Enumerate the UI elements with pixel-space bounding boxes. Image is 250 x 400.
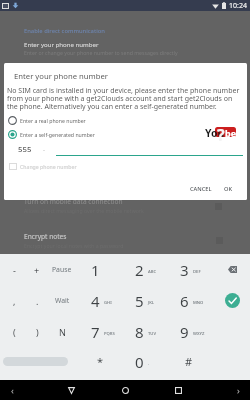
staticText: Enter or change your phone number to sen… <box>24 49 178 56</box>
button[interactable]: Next <box>226 380 250 400</box>
staticText: Wait <box>55 296 70 305</box>
button[interactable]: Recents <box>160 380 196 400</box>
staticText: ? <box>217 124 225 144</box>
staticText: Turn on mobile data connection <box>24 197 123 206</box>
button[interactable]: Pause <box>50 254 74 285</box>
button[interactable]: CANCEL <box>185 181 217 197</box>
staticText: Enter a self-generated number <box>20 131 95 138</box>
staticText: Enable direct communication <box>24 27 105 35</box>
button[interactable]: ( <box>2 316 26 347</box>
staticText: 9 <box>180 322 189 342</box>
staticText: TUV <box>148 331 157 337</box>
staticText: ) <box>36 326 39 338</box>
button[interactable]: - <box>2 254 26 285</box>
staticText: 555 <box>18 144 32 155</box>
staticText: - <box>43 146 45 154</box>
button[interactable]: Back <box>53 380 89 400</box>
button[interactable]: * <box>78 346 122 377</box>
staticText: N <box>59 326 66 338</box>
staticText: * <box>97 354 104 369</box>
staticText: , <box>13 295 16 307</box>
staticText: . <box>36 295 39 307</box>
staticText: 3 <box>180 260 189 280</box>
button[interactable]: 7 <box>83 316 127 347</box>
staticText: You <box>205 126 225 140</box>
button[interactable]: Change phone number <box>4 160 247 172</box>
staticText: Enter your phone number <box>14 71 108 81</box>
button[interactable]: # <box>167 346 211 377</box>
staticText: 1 <box>91 260 100 280</box>
button[interactable]: Wait <box>50 285 74 316</box>
staticText: MNO <box>193 300 204 306</box>
staticText: 7 <box>91 322 100 342</box>
staticText: 5 <box>135 291 144 311</box>
staticText: DEF <box>193 269 201 275</box>
button[interactable]: OK <box>219 181 238 197</box>
staticText: ‹ <box>11 384 14 396</box>
staticText: ( <box>13 326 16 338</box>
staticText: CANCEL <box>190 185 212 193</box>
button[interactable]: Enter <box>214 285 250 316</box>
button[interactable]: 4 <box>83 285 127 316</box>
button[interactable]: Enter a self-generated number <box>4 128 247 141</box>
staticText: . <box>148 361 150 367</box>
button[interactable]: 5 <box>127 285 171 316</box>
button[interactable]: Enter a real phone number <box>4 114 247 127</box>
button[interactable]: Home <box>107 380 143 400</box>
button[interactable]: 1 <box>83 254 127 285</box>
button[interactable]: 6 <box>172 285 216 316</box>
staticText: + <box>34 264 40 276</box>
staticText: Enter your phone number <box>24 40 99 48</box>
staticText: No SIM card is installed in your device,… <box>7 86 241 111</box>
button[interactable]: 0 <box>127 346 171 377</box>
staticText: WXYZ <box>193 331 205 337</box>
staticText: be <box>225 127 237 139</box>
button[interactable]: Backspace <box>214 254 250 285</box>
staticText: # <box>185 354 193 369</box>
staticText: OK <box>224 185 233 193</box>
button[interactable]: + <box>25 254 49 285</box>
staticText: 2 <box>135 260 144 280</box>
button[interactable]: 8 <box>127 316 171 347</box>
staticText: GHI <box>104 300 112 306</box>
button[interactable]: 3 <box>172 254 216 285</box>
staticText: 8 <box>135 322 144 342</box>
button[interactable]: , <box>2 285 26 316</box>
staticText: 6 <box>180 291 189 311</box>
staticText: - <box>13 264 16 276</box>
button[interactable]: ) <box>25 316 49 347</box>
staticText: Change phone number <box>20 163 77 170</box>
button[interactable]: 2 <box>127 254 171 285</box>
staticText: Encrypt notes <box>24 232 67 241</box>
button[interactable]: Space <box>3 346 68 377</box>
button[interactable]: . <box>25 285 49 316</box>
staticText: Enter a real phone number <box>20 117 86 124</box>
staticText: PQRS <box>104 331 115 337</box>
button[interactable]: 9 <box>172 316 216 347</box>
button[interactable]: N <box>50 316 74 347</box>
staticText: JKL <box>148 300 155 306</box>
staticText: ABC <box>148 269 157 275</box>
staticText: 10:24 <box>229 1 247 11</box>
button[interactable]: Previous <box>0 380 24 400</box>
staticText: 0 <box>135 352 144 372</box>
staticText: 4 <box>91 291 100 311</box>
staticText: Pause <box>52 265 72 274</box>
staticText: › <box>237 384 240 396</box>
